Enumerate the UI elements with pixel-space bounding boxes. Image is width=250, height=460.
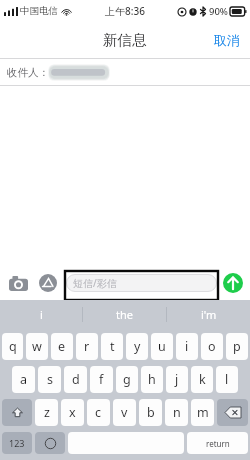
button[interactable]: x [61,399,84,426]
staticText: c [95,404,102,421]
staticText: i'm [201,307,217,322]
staticText: 上午8:36 [105,4,145,18]
staticText: y [134,338,141,355]
button[interactable]: g [116,366,138,393]
button[interactable]: Emoji [35,432,65,454]
staticText: u [158,338,166,355]
staticText: m [197,404,209,421]
button[interactable]: App Store [35,270,61,296]
button[interactable]: 取消 [204,26,250,54]
button[interactable]: k [191,366,213,393]
button[interactable]: b [139,399,162,426]
staticText: f [99,371,104,388]
staticText: i [40,307,43,322]
button[interactable]: q [2,333,23,360]
staticText: b [147,404,155,421]
staticText: t [110,338,115,355]
button[interactable]: the [83,300,166,328]
staticText: l [225,371,229,388]
button[interactable]: j [166,366,188,393]
button[interactable]: a [12,366,35,393]
staticText: return [206,438,230,449]
button[interactable]: Delete [217,399,248,426]
staticText: d [72,371,80,388]
button[interactable]: Camera [5,270,31,296]
staticText: g [123,371,131,388]
button[interactable]: c [87,399,110,426]
button[interactable]: w [26,333,48,360]
button[interactable]: t [101,333,123,360]
staticText: 取消 [214,32,240,48]
button[interactable]: u [151,333,173,360]
staticText: x [69,404,76,421]
staticText: 收件人： [7,66,49,79]
button[interactable]: p [226,333,248,360]
staticText: i [185,338,189,355]
staticText: n [173,404,181,421]
staticText: r [84,338,90,355]
button[interactable] [68,432,184,454]
button[interactable]: m [191,399,214,426]
button[interactable]: r [76,333,98,360]
button[interactable]: h [141,366,163,393]
button[interactable]: z [35,399,58,426]
staticText: k [199,371,206,388]
button[interactable]: y [126,333,148,360]
staticText: h [148,371,156,388]
button[interactable]: 短信/彩信 [65,272,218,294]
button[interactable]: d [64,366,87,393]
staticText: 短信/彩信 [73,276,117,290]
button[interactable]: 收件人： [0,59,250,85]
button[interactable]: e [51,333,73,360]
staticText: p [233,338,241,355]
staticText: w [32,338,42,355]
button[interactable]: Shift [2,399,32,426]
staticText: z [44,404,50,421]
button[interactable]: Send [221,271,245,295]
button[interactable]: l [216,366,238,393]
staticText: 123 [9,437,25,449]
button[interactable]: v [113,399,136,426]
staticText: the [116,307,133,322]
staticText: v [121,404,128,421]
staticText: 90% [209,5,228,18]
staticText: 新信息 [103,31,147,49]
staticText: a [20,371,28,388]
staticText: q [9,338,17,355]
button[interactable]: i'm [167,300,250,328]
button[interactable]: Numbers [2,432,32,454]
button[interactable]: i [0,300,82,328]
button[interactable]: return [187,432,248,454]
button[interactable]: s [38,366,61,393]
button[interactable]: o [201,333,223,360]
staticText: o [208,338,216,355]
button[interactable]: f [90,366,113,393]
staticText: 中国电信 [20,5,58,17]
button[interactable]: i [176,333,198,360]
button[interactable]: n [165,399,188,426]
staticText: e [58,338,66,355]
staticText: s [47,371,53,388]
staticText: j [175,371,179,388]
